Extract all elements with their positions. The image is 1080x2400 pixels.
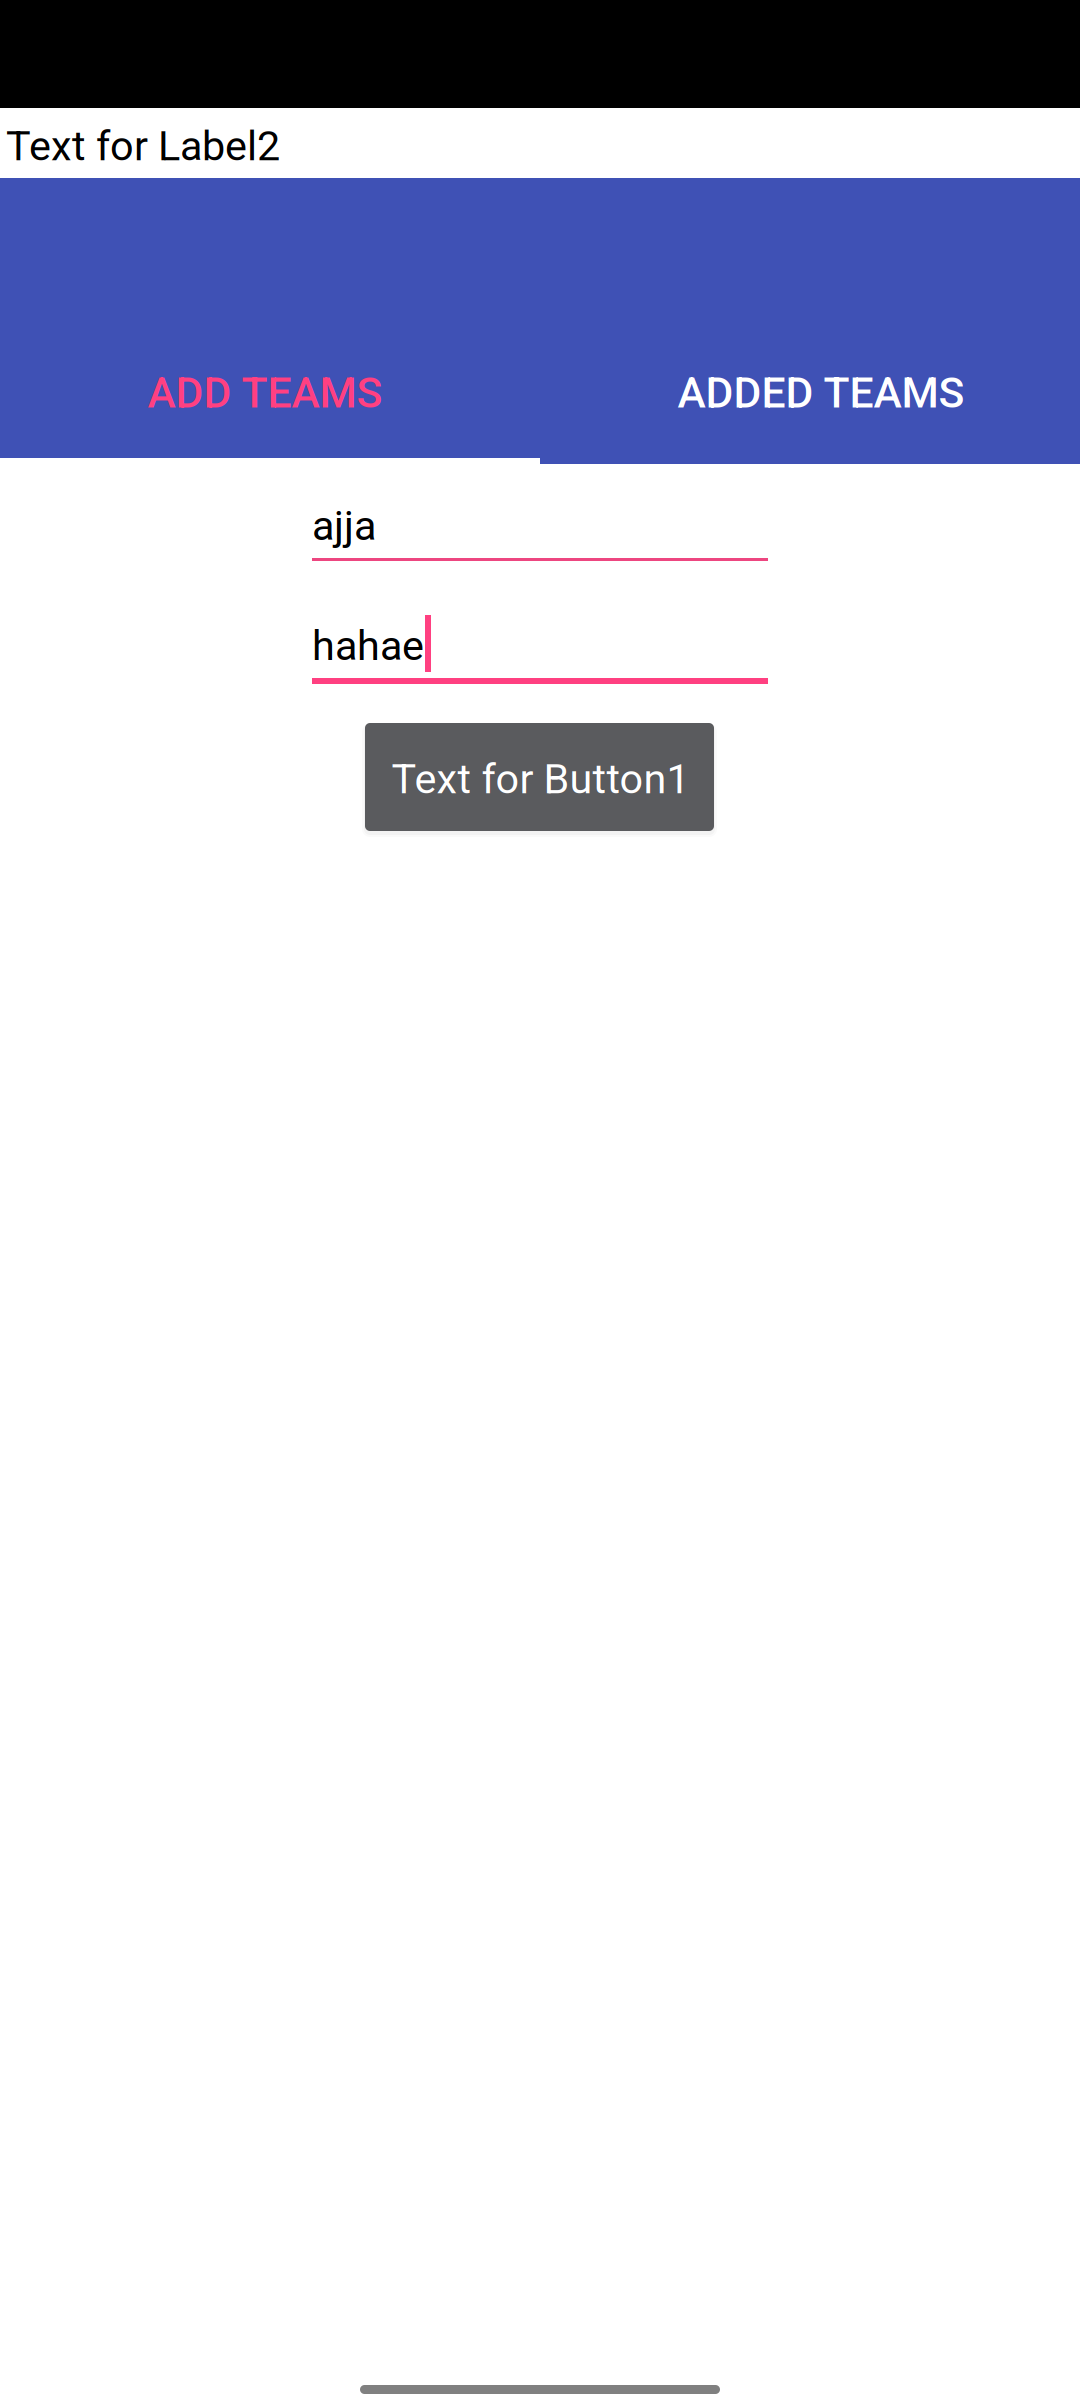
button[interactable]: Text for Button1 (365, 723, 714, 831)
staticText: Text for Button1 (391, 755, 689, 803)
staticText: Text for Label2 (6, 122, 280, 170)
button[interactable]: hahae (312, 596, 768, 682)
staticText: ADDED TEAMS (677, 368, 964, 418)
button[interactable]: ajja (312, 476, 768, 562)
button[interactable]: ADD TEAMS (0, 179, 540, 465)
staticText: hahae (312, 622, 424, 670)
staticText: ADD TEAMS (147, 368, 382, 418)
button[interactable]: ADDED TEAMS (540, 179, 1080, 465)
staticText: ajja (312, 502, 376, 550)
